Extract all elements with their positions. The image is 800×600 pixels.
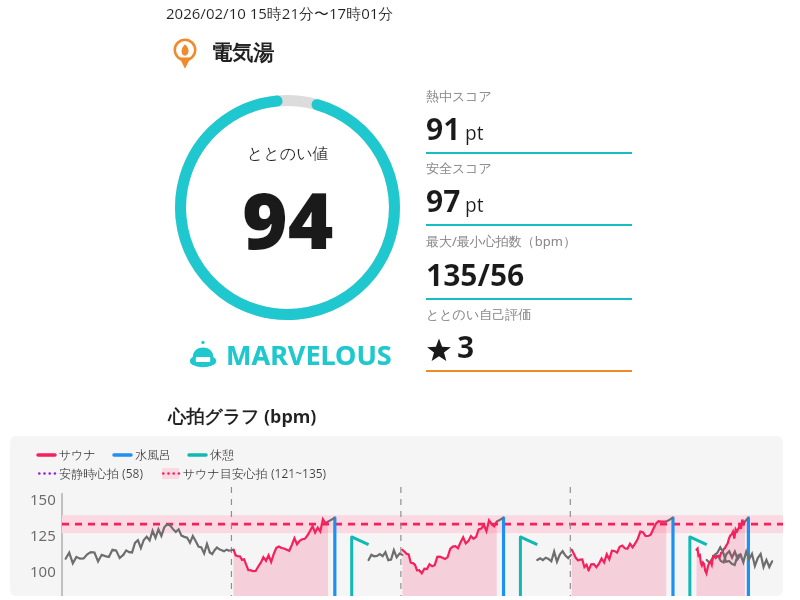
button[interactable]: サウナ — [10, 436, 783, 596]
staticText: 97 — [426, 180, 461, 221]
button[interactable]: 熱中スコア — [426, 82, 632, 154]
staticText: 最大/最小心拍数（bpm） — [426, 232, 576, 250]
staticText: 135/56 — [426, 254, 525, 295]
staticText: 熱中スコア — [426, 88, 492, 104]
staticText: 水風呂 — [135, 447, 171, 462]
button[interactable]: Sauna facility — [168, 30, 274, 76]
staticText: 100 — [30, 561, 56, 581]
staticText: 休憩 — [210, 447, 234, 462]
staticText: 125 — [30, 525, 56, 545]
staticText: pt — [465, 120, 484, 146]
staticText: 150 — [30, 489, 56, 509]
other: Sauna hat rating — [188, 339, 218, 369]
staticText: サウナ目安心拍 (121~135) — [183, 465, 327, 481]
staticText: MARVELOUS — [226, 336, 392, 373]
other: Sauna facility — [168, 36, 202, 70]
staticText: ととのい値 — [247, 144, 329, 164]
button[interactable]: 安全スコア — [426, 154, 632, 226]
staticText: ととのい自己評価 — [426, 306, 532, 322]
staticText: サウナ — [59, 447, 96, 462]
button[interactable]: Sauna hat rating — [188, 334, 392, 374]
staticText: 電気湯 — [211, 40, 274, 66]
button[interactable]: ととのい自己評価 — [426, 300, 632, 372]
staticText: 2026/02/10 15時21分〜17時01分 — [166, 3, 394, 23]
staticText: 安全スコア — [426, 160, 492, 176]
staticText: pt — [465, 192, 484, 218]
staticText: 94 — [242, 166, 334, 272]
staticText: 3 — [457, 326, 475, 367]
button[interactable]: 最大/最小心拍数（bpm） — [426, 226, 632, 300]
staticText: 91 — [426, 108, 461, 149]
staticText: 安静時心拍 (58) — [59, 465, 144, 481]
staticText: 心拍グラフ (bpm) — [168, 404, 317, 429]
